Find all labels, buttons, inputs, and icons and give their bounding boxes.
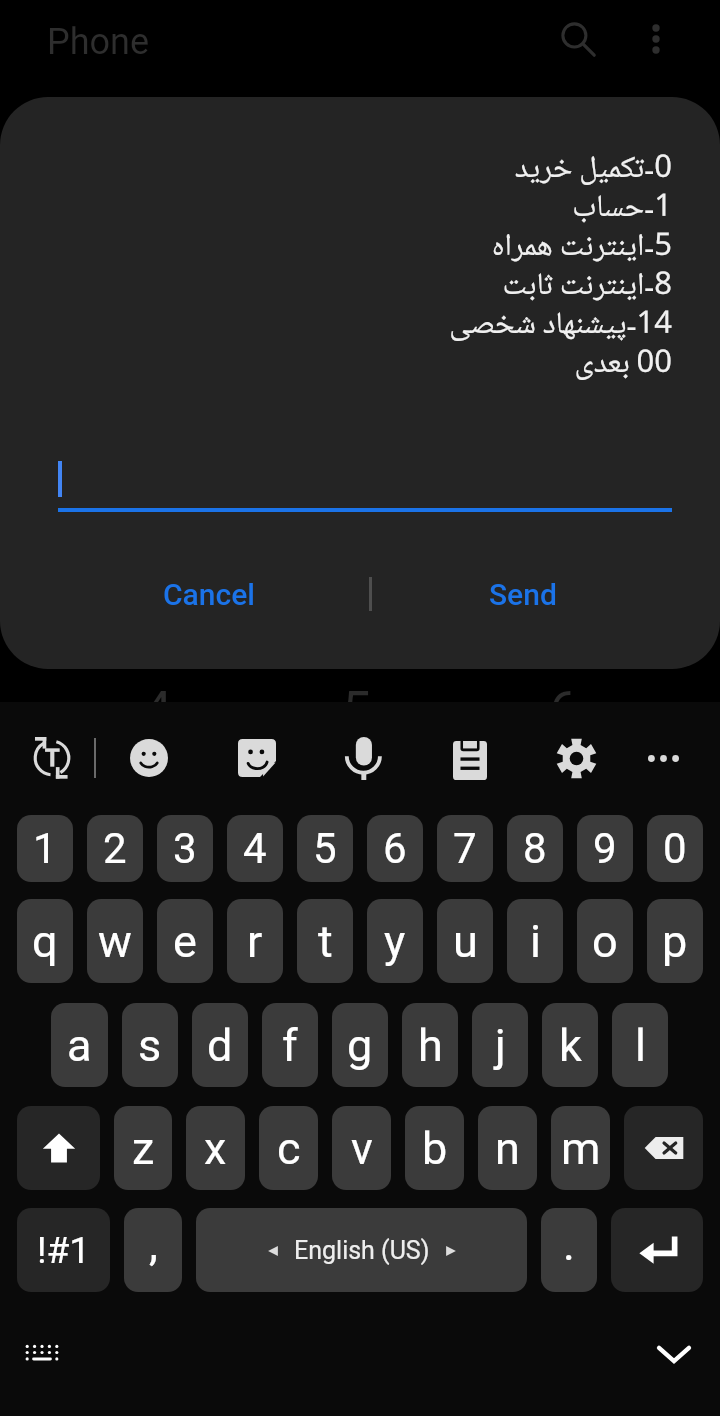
button[interactable]: h — [402, 1003, 458, 1087]
staticText: 0-تکمیل خرید — [0, 148, 672, 190]
button[interactable]: a — [51, 1003, 108, 1087]
staticText: u — [453, 915, 478, 968]
staticText: v — [351, 1122, 373, 1175]
button[interactable]: o — [577, 899, 633, 983]
button[interactable]: p — [647, 899, 703, 983]
staticText: z — [132, 1122, 155, 1175]
button[interactable]: d — [192, 1003, 248, 1087]
button[interactable]: i — [507, 899, 563, 983]
staticText: 1-حساب — [0, 187, 672, 229]
staticText: 7 — [453, 824, 477, 873]
button[interactable]: Translate — [22, 728, 82, 788]
button[interactable]: More options — [626, 9, 686, 69]
button[interactable]: y — [367, 899, 423, 983]
staticText: 4 — [243, 824, 267, 873]
staticText: . — [563, 1218, 575, 1271]
button[interactable]: Shift — [17, 1106, 100, 1190]
button[interactable]: 3 — [157, 815, 213, 882]
staticText: d — [207, 1019, 233, 1072]
staticText: x — [204, 1122, 227, 1175]
staticText: 5 — [342, 680, 372, 741]
staticText: T — [45, 744, 60, 772]
button[interactable]: b — [405, 1106, 464, 1190]
button[interactable]: q — [17, 899, 73, 983]
staticText: w — [98, 915, 132, 968]
staticText: o — [592, 915, 618, 968]
button[interactable]: l — [612, 1003, 668, 1087]
button[interactable]: s — [122, 1003, 178, 1087]
button[interactable]: m — [551, 1106, 610, 1190]
staticText: 5-اینترنت همراه — [0, 226, 672, 268]
staticText: s — [138, 1019, 162, 1072]
button[interactable]: Change keyboard — [12, 1324, 72, 1384]
staticText: q — [32, 915, 58, 968]
button[interactable]: 2 — [87, 815, 143, 882]
staticText: 14-پیشنهاد شخصی — [0, 304, 672, 346]
button[interactable]: 8 — [507, 815, 563, 882]
button[interactable]: More — [633, 728, 693, 788]
button[interactable]: Stickers — [227, 728, 287, 788]
staticText: c — [277, 1122, 301, 1175]
button[interactable]: Enter — [611, 1208, 703, 1292]
staticText: h — [418, 1019, 443, 1072]
staticText: t — [318, 915, 333, 968]
staticText: a — [67, 1019, 92, 1072]
staticText: 5 — [313, 824, 337, 873]
button[interactable]: Send — [372, 558, 673, 630]
button[interactable]: Backspace — [624, 1106, 703, 1190]
button[interactable]: 6 — [367, 815, 423, 882]
staticText: Cancel — [163, 577, 256, 612]
staticText: 6 — [549, 680, 579, 741]
button[interactable]: c — [259, 1106, 318, 1190]
staticText: !#1 — [37, 1229, 91, 1272]
staticText: 9 — [593, 824, 617, 873]
button[interactable]: 0 — [647, 815, 703, 882]
staticText: 1 — [33, 824, 57, 873]
button[interactable]: f — [262, 1003, 318, 1087]
button[interactable]: 7 — [437, 815, 493, 882]
staticText: m — [561, 1122, 601, 1175]
button[interactable]: e — [157, 899, 213, 983]
staticText: r — [247, 915, 263, 968]
staticText: g — [347, 1019, 373, 1072]
staticText: n — [495, 1122, 520, 1175]
button[interactable]: Settings — [546, 728, 606, 788]
staticText: 0 — [663, 824, 687, 873]
button[interactable]: 9 — [577, 815, 633, 882]
button[interactable]: u — [437, 899, 493, 983]
staticText: k — [559, 1019, 582, 1072]
button[interactable]: v — [332, 1106, 391, 1190]
button[interactable]: g — [332, 1003, 388, 1087]
staticText: y — [384, 915, 406, 968]
button[interactable]: 4 — [227, 815, 283, 882]
button[interactable]: 5 — [297, 815, 353, 882]
staticText: 00 بعدی — [0, 343, 672, 385]
staticText: , — [149, 1218, 158, 1271]
button[interactable]: 1 — [17, 815, 73, 882]
button[interactable]: Search — [548, 9, 608, 69]
button[interactable]: n — [478, 1106, 537, 1190]
button[interactable]: w — [87, 899, 143, 983]
staticText: 4 — [143, 680, 173, 741]
staticText: 3 — [173, 824, 197, 873]
button[interactable]: English (US) — [196, 1208, 527, 1292]
button[interactable]: x — [186, 1106, 245, 1190]
button[interactable]: . — [541, 1208, 597, 1292]
button[interactable]: , — [124, 1208, 182, 1292]
button[interactable]: Hide keyboard — [644, 1324, 704, 1384]
button[interactable]: r — [227, 899, 283, 983]
button[interactable]: j — [472, 1003, 528, 1087]
button[interactable]: Cancel — [48, 558, 370, 630]
staticText: e — [173, 915, 197, 968]
button[interactable]: t — [297, 899, 353, 983]
staticText: 2 — [103, 824, 127, 873]
staticText: English (US) — [294, 1236, 430, 1265]
button[interactable]: !#1 — [17, 1208, 110, 1292]
button[interactable]: k — [542, 1003, 598, 1087]
button[interactable]: Emoji — [119, 728, 179, 788]
staticText: Phone — [47, 21, 150, 63]
button[interactable]: z — [114, 1106, 172, 1190]
staticText: 8 — [523, 824, 547, 873]
button[interactable]: Voice input — [332, 728, 392, 788]
button[interactable]: Clipboard — [440, 728, 500, 788]
